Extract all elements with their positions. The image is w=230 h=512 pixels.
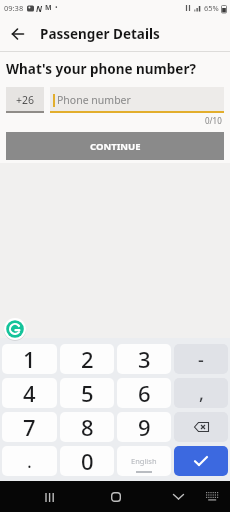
- staticText: N: [36, 3, 43, 14]
- button[interactable]: 0: [60, 446, 114, 476]
- button[interactable]: 4: [2, 378, 57, 408]
- staticText: 8: [81, 412, 94, 442]
- button[interactable]: +26: [6, 87, 44, 113]
- button[interactable]: [200, 485, 224, 509]
- staticText: 1: [23, 344, 36, 374]
- staticText: Passenger Details: [40, 25, 160, 43]
- button[interactable]: [174, 446, 228, 476]
- staticText: English: [131, 456, 157, 466]
- staticText: 65%: [204, 3, 219, 13]
- staticText: 5: [81, 378, 94, 408]
- staticText: 09:38: [4, 3, 24, 13]
- button[interactable]: .: [2, 446, 57, 476]
- button[interactable]: [104, 485, 128, 509]
- button[interactable]: 9: [117, 412, 171, 442]
- button[interactable]: -: [174, 344, 228, 374]
- staticText: Phone number: [57, 93, 131, 107]
- button[interactable]: 7: [2, 412, 57, 442]
- staticText: CONTINUE: [90, 140, 141, 153]
- staticText: 6: [138, 378, 151, 408]
- button[interactable]: CONTINUE: [6, 132, 224, 160]
- button[interactable]: 6: [117, 378, 171, 408]
- staticText: M: [45, 3, 52, 13]
- staticText: 3: [138, 344, 151, 374]
- button[interactable]: ,: [174, 378, 228, 408]
- staticText: -: [198, 347, 204, 372]
- staticText: 4: [23, 378, 36, 408]
- staticText: 0: [81, 446, 94, 476]
- button[interactable]: 1: [2, 344, 57, 374]
- staticText: What's your phone number?: [6, 60, 196, 78]
- button[interactable]: [38, 485, 62, 509]
- button[interactable]: [174, 412, 228, 442]
- staticText: ,: [199, 381, 204, 406]
- staticText: .: [27, 449, 32, 474]
- button[interactable]: Phone number: [50, 87, 224, 113]
- staticText: 2: [81, 344, 94, 374]
- staticText: 0/10: [205, 115, 222, 126]
- staticText: 7: [23, 412, 36, 442]
- staticText: 9: [138, 412, 151, 442]
- button[interactable]: 8: [60, 412, 114, 442]
- button[interactable]: English: [117, 446, 171, 476]
- staticText: •: [55, 3, 58, 13]
- button[interactable]: 3: [117, 344, 171, 374]
- button[interactable]: [0, 16, 35, 51]
- button[interactable]: 2: [60, 344, 114, 374]
- button[interactable]: 5: [60, 378, 114, 408]
- button[interactable]: [166, 485, 190, 509]
- staticText: +26: [16, 93, 35, 107]
- button[interactable]: [4, 318, 26, 340]
